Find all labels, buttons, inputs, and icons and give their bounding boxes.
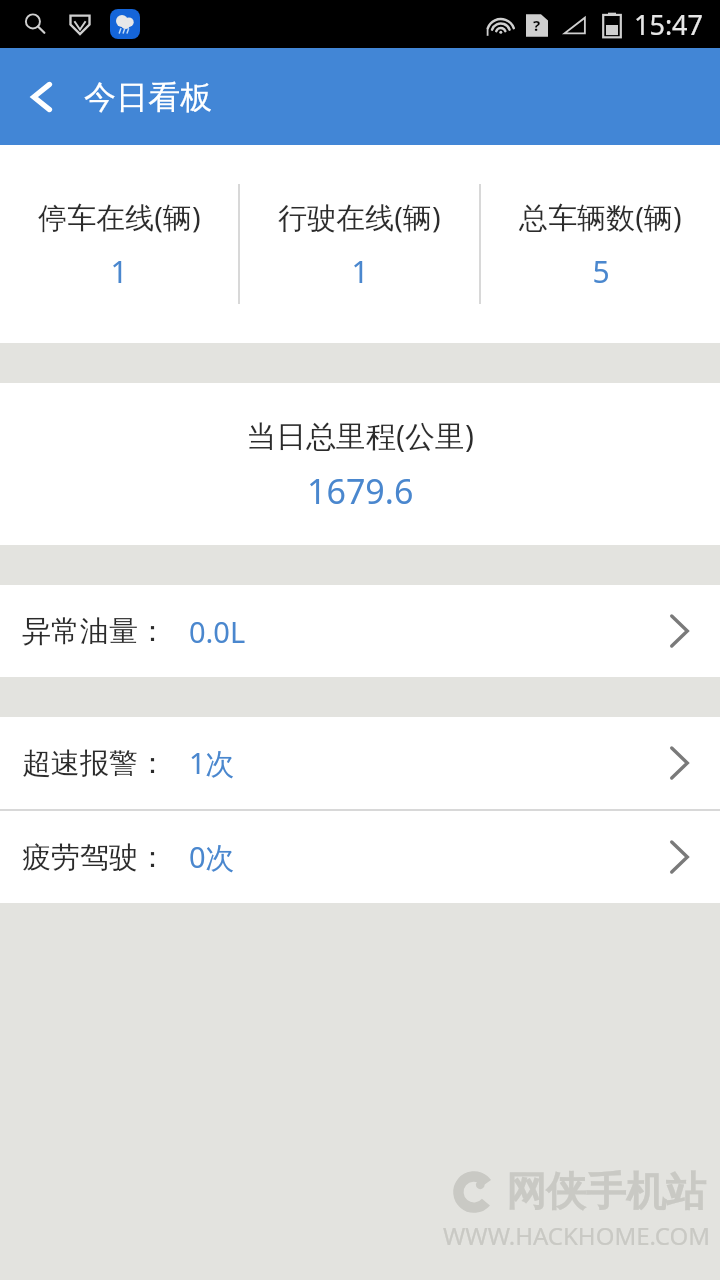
staticText: 0.0L (189, 612, 246, 651)
staticText: 总车辆数(辆) (519, 197, 682, 237)
staticText: 今日看板 (84, 77, 212, 117)
staticText: 1次 (189, 743, 235, 783)
button[interactable]: 停车在线(辆) (0, 145, 238, 343)
staticText: 当日总里程(公里) (246, 415, 474, 456)
button[interactable]: 异常油量： (0, 585, 720, 677)
button[interactable]: 行驶在线(辆) (240, 145, 479, 343)
button[interactable]: 总车辆数(辆) (481, 145, 720, 343)
staticText: 网侠手机站 (506, 1166, 706, 1216)
staticText: 1 (351, 251, 369, 292)
staticText: 15:47 (634, 6, 704, 43)
staticText: ? (533, 15, 541, 35)
staticText: WWW.HACKHOME.COM (443, 1219, 710, 1252)
staticText: 超速报警： (22, 745, 167, 782)
button[interactable]: 当日总里程(公里) (0, 383, 720, 545)
staticText: 异常油量： (22, 613, 167, 650)
staticText: 停车在线(辆) (38, 197, 201, 237)
button[interactable]: 疲劳驾驶： (0, 811, 720, 903)
staticText: 1 (110, 251, 128, 292)
button[interactable]: 超速报警： (0, 717, 720, 809)
staticText: 5 (592, 251, 610, 292)
staticText: 1679.6 (307, 468, 414, 514)
staticText: 行驶在线(辆) (278, 197, 441, 237)
staticText: 疲劳驾驶： (22, 839, 167, 876)
button[interactable]: Back (0, 48, 84, 145)
staticText: 0次 (189, 837, 235, 877)
